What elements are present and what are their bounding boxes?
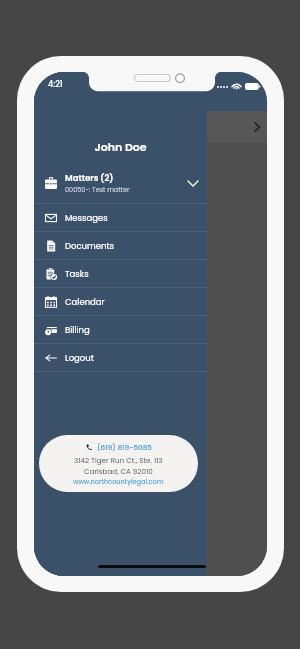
button[interactable]: Documents: [34, 232, 207, 259]
staticText: 3142 Tiger Run Ct., Ste. 113: [74, 455, 163, 465]
staticText: Documents: [65, 240, 115, 252]
button[interactable]: Logout: [34, 344, 207, 371]
button[interactable]: (619) 819-5085: [39, 435, 198, 492]
staticText: 00050-: Test matter: [65, 185, 130, 194]
button[interactable]: Matters (2): [34, 163, 207, 203]
staticText: Tasks: [65, 268, 89, 280]
button[interactable]: Messages: [34, 204, 207, 231]
button[interactable]: Billing: [34, 316, 207, 343]
staticText: (619) 819-5085: [97, 442, 152, 452]
button[interactable]: Calendar: [34, 288, 207, 315]
staticText: Matters (2): [65, 172, 114, 184]
staticText: Messages: [65, 212, 108, 224]
staticText: Carlsbad, CA 92010: [84, 466, 153, 476]
staticText: John Doe: [34, 139, 207, 154]
staticText: Calendar: [65, 296, 105, 308]
staticText: www.northcountylegal.com: [73, 477, 164, 486]
button[interactable]: Tasks: [34, 260, 207, 287]
staticText: 4:21: [48, 79, 63, 90]
staticText: Logout: [65, 352, 94, 364]
staticText: Billing: [65, 324, 90, 336]
